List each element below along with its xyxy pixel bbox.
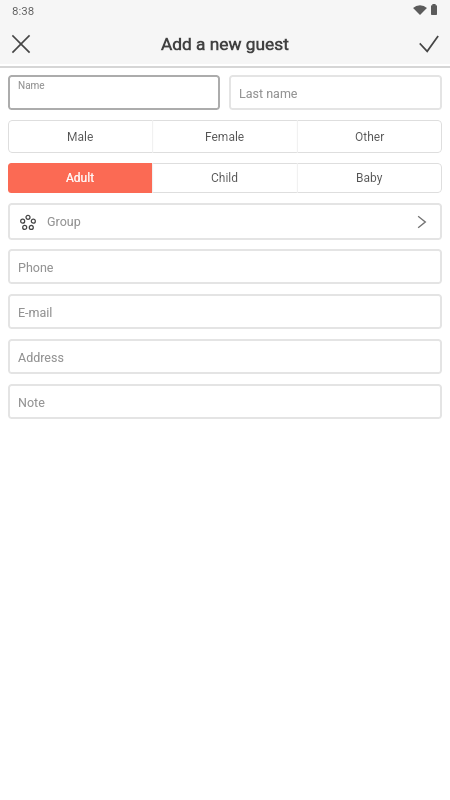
staticText: Name [18, 80, 45, 92]
staticText: Group [47, 214, 81, 229]
button[interactable]: Phone [8, 249, 442, 284]
button[interactable]: Group [8, 203, 442, 240]
staticText: Female [205, 130, 245, 144]
button[interactable]: Male [8, 120, 152, 153]
button[interactable]: Name [8, 75, 220, 110]
button[interactable]: Other [297, 120, 442, 153]
staticText: Baby [356, 171, 383, 185]
button[interactable]: E-mail [8, 294, 442, 329]
staticText: Adult [66, 171, 95, 185]
staticText: Note [18, 395, 45, 410]
button[interactable]: Last name [229, 75, 442, 110]
staticText: 8:38 [12, 4, 35, 17]
staticText: Add a new guest [161, 34, 289, 54]
button[interactable]: Note [8, 384, 442, 419]
button[interactable]: Female [152, 120, 297, 153]
staticText: Address [18, 350, 64, 365]
button[interactable]: Adult [8, 163, 152, 193]
button[interactable]: Baby [297, 163, 442, 193]
button[interactable]: Child [152, 163, 297, 193]
staticText: Child [211, 171, 239, 185]
staticText: Phone [18, 260, 54, 275]
staticText: Male [67, 130, 94, 144]
button[interactable]: Save [408, 24, 450, 64]
button[interactable]: Address [8, 339, 442, 374]
staticText: Last name [239, 86, 298, 101]
button[interactable]: Close [0, 24, 42, 64]
staticText: E-mail [18, 305, 53, 320]
staticText: Other [355, 130, 385, 144]
